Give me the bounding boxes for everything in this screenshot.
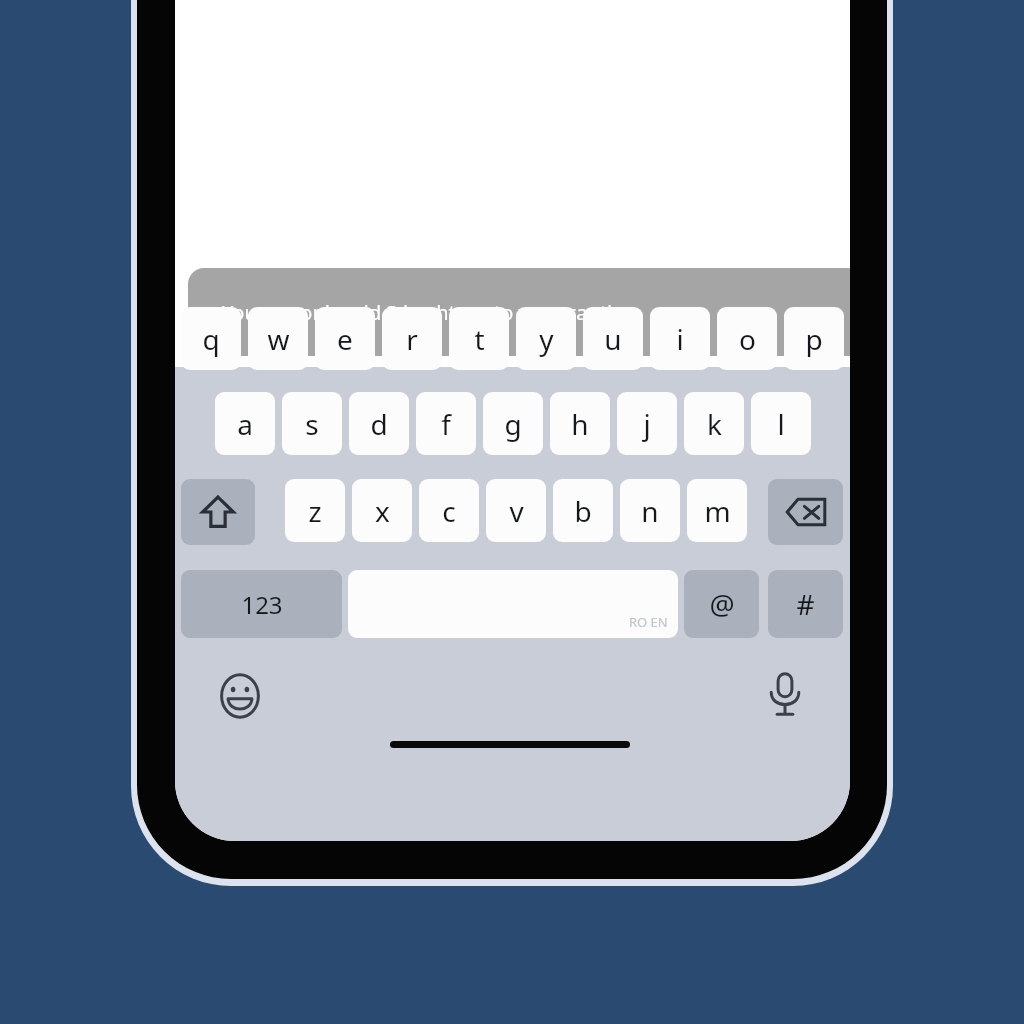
button[interactable]: h <box>550 392 610 455</box>
staticText: i <box>676 320 684 358</box>
button[interactable]: z <box>285 479 345 542</box>
button[interactable]: j <box>617 392 677 455</box>
staticText: m <box>704 492 731 530</box>
staticText: v <box>509 492 524 530</box>
staticText: w <box>267 320 290 358</box>
button[interactable]: t <box>449 307 509 370</box>
button[interactable]: c <box>419 479 479 542</box>
staticText: a <box>237 405 253 443</box>
staticText: 123 <box>241 588 283 621</box>
button[interactable]: @ <box>684 570 759 638</box>
staticText: g <box>504 405 522 443</box>
button[interactable]: f <box>416 392 476 455</box>
button[interactable]: s <box>282 392 342 455</box>
button[interactable]: w <box>248 307 308 370</box>
button[interactable]: u <box>583 307 643 370</box>
button[interactable]: q <box>181 307 241 370</box>
staticText: RO EN <box>629 613 668 631</box>
staticText: q <box>202 320 220 358</box>
staticText: p <box>805 320 823 358</box>
staticText: t <box>474 320 485 358</box>
staticText: l <box>777 405 785 443</box>
button[interactable]: a <box>215 392 275 455</box>
button[interactable]: y <box>516 307 576 370</box>
button[interactable]: p <box>784 307 844 370</box>
button[interactable]: v <box>486 479 546 542</box>
button[interactable]: Voice input <box>762 671 808 717</box>
button[interactable]: g <box>483 392 543 455</box>
staticText: # <box>796 585 815 623</box>
button[interactable]: # <box>768 570 843 638</box>
button[interactable]: b <box>553 479 613 542</box>
button[interactable]: l <box>751 392 811 455</box>
button[interactable]: Emoji <box>217 673 263 719</box>
button[interactable]: Shift <box>181 479 255 545</box>
staticText: o <box>739 320 756 358</box>
button[interactable]: Space <box>348 570 678 638</box>
button[interactable]: You can only add 3 hashtags to your capt… <box>188 268 850 356</box>
button[interactable]: Backspace <box>768 479 843 545</box>
staticText: h <box>571 405 589 443</box>
staticText: f <box>441 405 451 443</box>
button[interactable]: d <box>349 392 409 455</box>
staticText: y <box>539 320 554 358</box>
staticText: e <box>337 320 353 358</box>
button[interactable]: k <box>684 392 744 455</box>
staticText: s <box>305 405 319 443</box>
staticText: @ <box>709 585 735 623</box>
staticText: x <box>375 492 390 530</box>
button[interactable]: e <box>315 307 375 370</box>
staticText: b <box>574 492 592 530</box>
staticText: z <box>308 492 322 530</box>
staticText: c <box>442 492 456 530</box>
staticText: r <box>406 320 418 358</box>
button[interactable]: 123 <box>181 570 342 638</box>
staticText: n <box>641 492 659 530</box>
button[interactable]: i <box>650 307 710 370</box>
button[interactable]: n <box>620 479 680 542</box>
button[interactable]: o <box>717 307 777 370</box>
button[interactable]: m <box>687 479 747 542</box>
button[interactable]: r <box>382 307 442 370</box>
staticText: You can only add 3 hashtags to your capt… <box>222 299 637 326</box>
staticText: j <box>643 405 651 443</box>
staticText: d <box>370 405 388 443</box>
button[interactable]: x <box>352 479 412 542</box>
staticText: u <box>604 320 622 358</box>
staticText: k <box>707 405 722 443</box>
